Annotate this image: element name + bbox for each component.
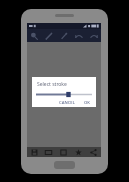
button[interactable]: Favorite [71, 147, 86, 157]
staticText: CANCEL [59, 100, 75, 106]
button[interactable]: New [56, 147, 71, 157]
button[interactable]: Share [86, 147, 101, 157]
button[interactable]: Redo [86, 29, 101, 42]
button[interactable]: Brush [27, 29, 41, 42]
button[interactable]: Pen [41, 29, 56, 42]
button[interactable]: CANCEL [57, 99, 77, 107]
staticText: Select stroke [37, 81, 67, 88]
button[interactable]: Save [27, 147, 41, 157]
button[interactable]: Pencil [56, 29, 71, 42]
staticText: OK [84, 100, 90, 106]
button[interactable]: OK [82, 99, 92, 107]
button[interactable]: Gallery [41, 147, 56, 157]
button[interactable]: Undo [71, 29, 86, 42]
button[interactable]: Stroke width slider [36, 91, 92, 98]
